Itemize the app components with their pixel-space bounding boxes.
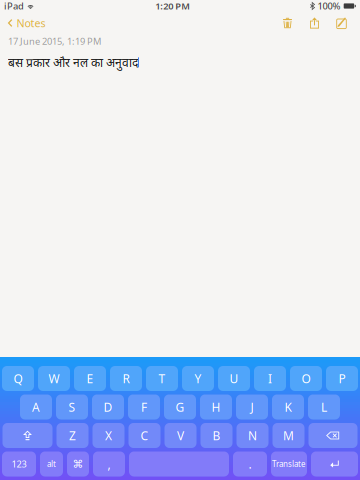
button[interactable]: J	[236, 394, 268, 419]
button[interactable]: V	[164, 423, 196, 448]
button[interactable]: R	[110, 366, 142, 391]
button[interactable]: Notes	[4, 12, 49, 34]
staticText: U	[229, 370, 238, 386]
button[interactable]	[308, 423, 357, 448]
button[interactable]: T	[146, 366, 178, 391]
button[interactable]: O	[290, 366, 322, 391]
button[interactable]: P	[326, 366, 358, 391]
staticText: Y	[194, 370, 201, 386]
staticText: 100%	[317, 0, 340, 12]
button[interactable]: U	[218, 366, 250, 391]
staticText: 17 June 2015, 1:19 PM	[8, 35, 101, 47]
staticText: S	[68, 399, 75, 415]
staticText: D	[103, 399, 112, 415]
staticText: .	[248, 456, 251, 472]
staticText: 123	[11, 458, 26, 470]
staticText: V	[177, 427, 184, 443]
staticText: alt	[47, 459, 56, 469]
staticText: B	[212, 427, 220, 443]
button[interactable]: C	[128, 423, 160, 448]
staticText: Q	[13, 370, 22, 386]
button[interactable]: S	[56, 394, 88, 419]
button[interactable]: New note	[328, 12, 355, 34]
staticText: J	[250, 399, 253, 415]
staticText: H	[211, 399, 220, 415]
staticText: R	[122, 370, 129, 386]
button[interactable]: N	[236, 423, 268, 448]
button[interactable]: Translate	[271, 451, 307, 476]
button[interactable]	[2, 423, 52, 448]
button[interactable]: Delete note	[274, 12, 301, 34]
button[interactable]: B	[200, 423, 232, 448]
button[interactable]: X	[92, 423, 124, 448]
staticText: O	[301, 370, 310, 386]
staticText: T	[158, 370, 165, 386]
staticText: K	[284, 399, 291, 415]
staticText: Z	[69, 427, 76, 443]
button[interactable]: E	[74, 366, 106, 391]
button[interactable]: Q	[2, 366, 34, 391]
button[interactable]: W	[38, 366, 70, 391]
staticText: बस प्रकार और नल का अनुवाद	[8, 54, 138, 70]
button[interactable]: ,	[93, 451, 125, 476]
button[interactable]: I	[254, 366, 286, 391]
button[interactable]	[311, 451, 358, 476]
staticText: G	[175, 399, 184, 415]
staticText: 1:20 PM	[155, 0, 190, 12]
staticText: iPad	[4, 0, 24, 12]
button[interactable]: K	[272, 394, 304, 419]
button[interactable]: A	[20, 394, 52, 419]
button[interactable]: D	[92, 394, 124, 419]
staticText: ,	[107, 456, 110, 472]
staticText: M	[283, 427, 294, 443]
staticText: F	[141, 399, 147, 415]
button[interactable]: Share	[301, 12, 328, 34]
button[interactable]: Z	[56, 423, 88, 448]
staticText: A	[32, 399, 40, 415]
staticText: Notes	[16, 16, 45, 30]
staticText: C	[140, 427, 148, 443]
button[interactable]: 123	[2, 451, 36, 476]
staticText: I	[268, 370, 272, 386]
button[interactable]: ⌘	[67, 451, 89, 476]
button[interactable]: F	[128, 394, 160, 419]
staticText: ⌘	[72, 458, 83, 470]
staticText: Translate	[272, 459, 306, 469]
button[interactable]: G	[164, 394, 196, 419]
button[interactable]: Y	[182, 366, 214, 391]
staticText: W	[48, 370, 59, 386]
button[interactable]: M	[272, 423, 304, 448]
button[interactable]: alt	[40, 451, 63, 476]
staticText: N	[248, 427, 257, 443]
button[interactable]: H	[200, 394, 232, 419]
button[interactable]: L	[308, 394, 340, 419]
staticText: L	[321, 399, 327, 415]
button[interactable]: .	[233, 451, 267, 476]
staticText: X	[105, 427, 112, 443]
staticText: P	[338, 370, 345, 386]
staticText: E	[86, 370, 93, 386]
